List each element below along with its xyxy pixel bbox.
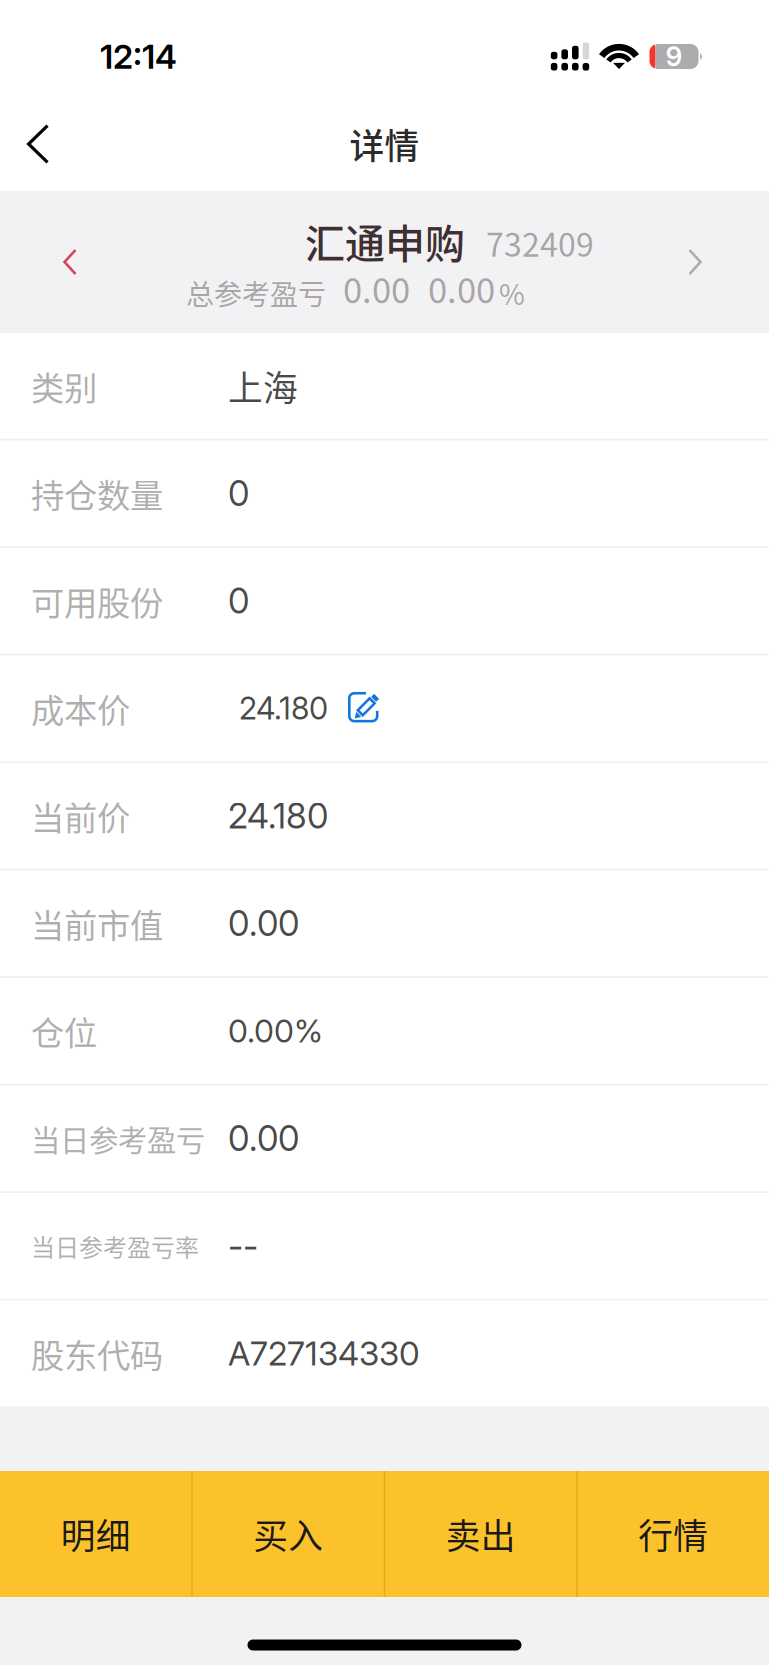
button[interactable]: Next stock — [621, 191, 769, 333]
staticText: 行情 — [638, 1509, 708, 1559]
staticText: 可用股份 — [31, 577, 163, 625]
staticText: 当前市值 — [31, 899, 163, 948]
staticText: 9 — [665, 40, 682, 73]
staticText: 0 — [228, 580, 249, 622]
staticText: 12:14 — [100, 36, 177, 77]
staticText: 持仓数量 — [31, 469, 163, 518]
button[interactable]: Previous stock — [0, 191, 140, 333]
staticText: 当日参考盈亏 — [31, 1117, 205, 1160]
staticText: 0 — [228, 472, 249, 514]
button[interactable]: Edit cost price — [348, 692, 381, 725]
button[interactable]: 明细 — [0, 1471, 191, 1597]
staticText: 类别 — [31, 362, 97, 410]
staticText: -- — [228, 1225, 258, 1267]
staticText: 0.00 — [428, 263, 495, 313]
staticText: 0.00 — [228, 1117, 299, 1159]
button[interactable]: 行情 — [578, 1471, 769, 1597]
staticText: 0.00 — [343, 263, 410, 313]
staticText: A727134330 — [228, 1333, 420, 1374]
staticText: 成本价 — [31, 684, 130, 733]
staticText: 732409 — [486, 220, 594, 266]
button[interactable]: Back — [0, 97, 76, 191]
staticText: 当前价 — [31, 792, 130, 840]
staticText: 股东代码 — [31, 1329, 163, 1378]
staticText: 0.00 — [228, 902, 299, 944]
staticText: 汇通申购 — [305, 212, 465, 270]
staticText: 上海 — [228, 361, 298, 411]
staticText: % — [499, 273, 525, 313]
staticText: 卖出 — [446, 1509, 516, 1559]
staticText: 明细 — [61, 1509, 131, 1559]
staticText: 总参考盈亏 — [186, 273, 326, 313]
staticText: 24.180 — [228, 795, 328, 837]
staticText: 24.180 — [239, 690, 328, 727]
button[interactable]: 买入 — [193, 1471, 384, 1597]
staticText: 仓位 — [31, 1007, 97, 1055]
staticText: 买入 — [253, 1509, 323, 1559]
staticText: 详情 — [349, 119, 419, 169]
button[interactable]: 卖出 — [385, 1471, 576, 1597]
staticText: 当日参考盈亏率 — [31, 1229, 199, 1263]
staticText: 0.00% — [228, 1012, 323, 1050]
